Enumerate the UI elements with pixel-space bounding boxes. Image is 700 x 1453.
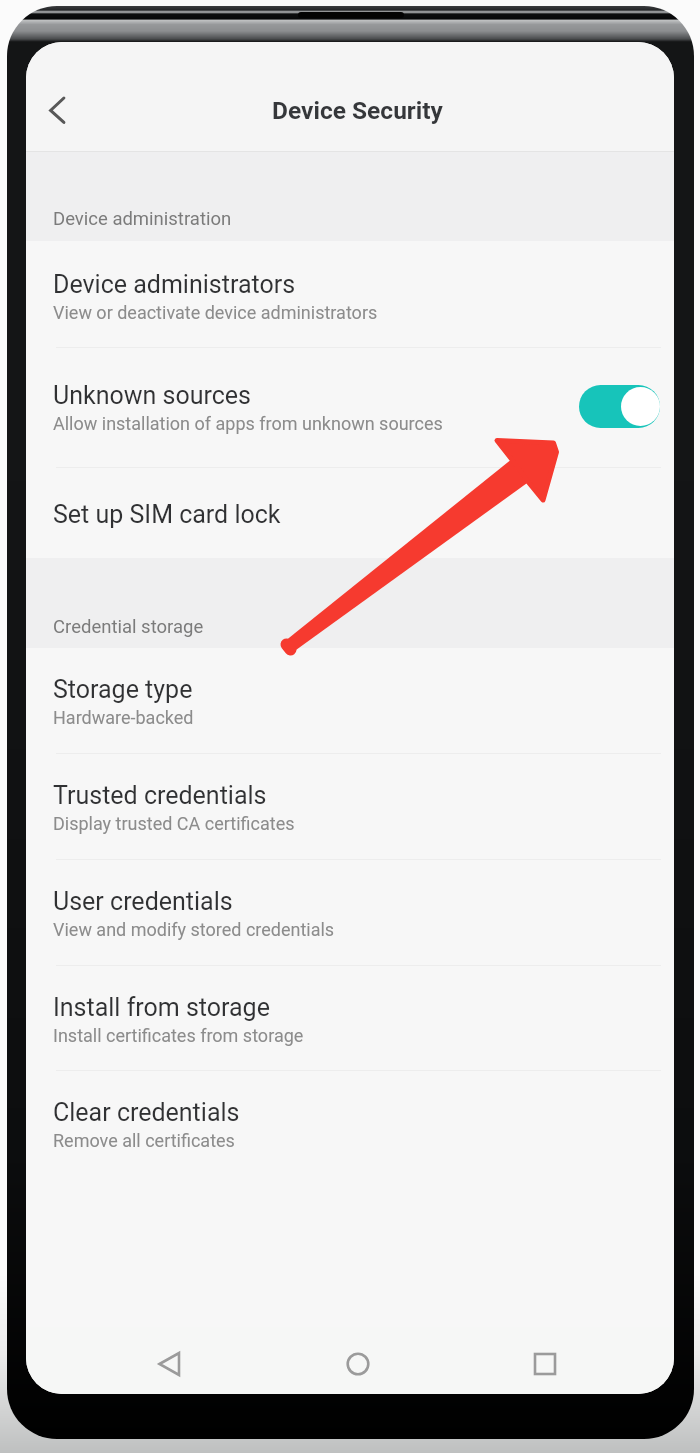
staticText: Storage type	[53, 675, 193, 704]
staticText: View or deactivate device administrators	[53, 302, 378, 323]
button[interactable]: Recent apps	[517, 1336, 573, 1392]
staticText: Device administrators	[53, 270, 296, 299]
button[interactable]: User credentials	[26, 860, 674, 965]
button[interactable]: Trusted credentials	[26, 754, 674, 859]
staticText: Device Security	[272, 96, 443, 125]
button[interactable]: Back	[142, 1336, 198, 1392]
staticText: Trusted credentials	[53, 781, 267, 810]
staticText: Install from storage	[53, 993, 270, 1022]
button[interactable]: Storage type	[26, 648, 674, 753]
staticText: Remove all certificates	[53, 1130, 235, 1151]
staticText: Set up SIM card lock	[53, 500, 281, 529]
staticText: Hardware-backed	[53, 707, 194, 728]
staticText: View and modify stored credentials	[53, 919, 335, 940]
staticText: Credential storage	[53, 616, 204, 638]
staticText: Allow installation of apps from unknown …	[53, 413, 443, 434]
button[interactable]: Device administrators	[26, 241, 674, 347]
button[interactable]: Home	[330, 1336, 386, 1392]
staticText: Display trusted CA certificates	[53, 813, 295, 834]
staticText: User credentials	[53, 887, 233, 916]
staticText: Unknown sources	[53, 381, 251, 410]
button[interactable]: Unknown sources	[26, 348, 674, 467]
button[interactable]: Set up SIM card lock	[26, 468, 674, 558]
button[interactable]: Install from storage	[26, 966, 674, 1070]
staticText: Install certificates from storage	[53, 1025, 304, 1046]
button[interactable]: Clear credentials	[26, 1071, 674, 1176]
staticText: Clear credentials	[53, 1098, 240, 1127]
button[interactable]: Unknown sources switch	[579, 385, 660, 428]
button[interactable]: Back	[38, 82, 94, 138]
staticText: Device administration	[53, 208, 232, 230]
